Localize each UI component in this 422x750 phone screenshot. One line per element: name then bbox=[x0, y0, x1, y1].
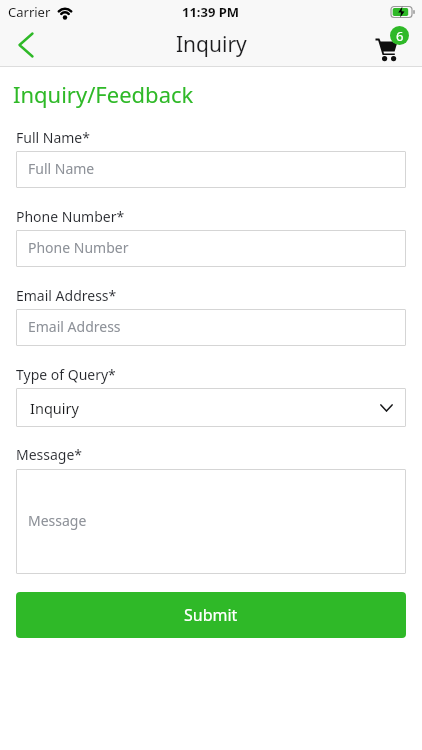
staticText: Message bbox=[28, 511, 87, 530]
staticText: Email Address bbox=[28, 317, 121, 336]
button[interactable]: Phone Number bbox=[16, 230, 406, 267]
button[interactable] bbox=[10, 29, 42, 61]
staticText: Full Name bbox=[28, 159, 95, 178]
staticText: 11:39 PM bbox=[182, 3, 240, 21]
button[interactable]: Inquiry bbox=[16, 388, 406, 427]
staticText: Inquiry bbox=[176, 30, 247, 59]
staticText: Message* bbox=[16, 445, 83, 464]
staticText: Email Address* bbox=[16, 286, 117, 305]
button[interactable]: Full Name bbox=[16, 151, 406, 188]
staticText: Phone Number* bbox=[16, 207, 125, 226]
button[interactable]: Message bbox=[16, 469, 406, 574]
staticText: Submit bbox=[184, 604, 238, 626]
staticText: Full Name* bbox=[16, 128, 90, 147]
staticText: Inquiry/Feedback bbox=[13, 79, 194, 109]
staticText: Type of Query* bbox=[16, 365, 116, 384]
button[interactable]: Submit bbox=[16, 592, 406, 638]
staticText: Carrier bbox=[8, 3, 51, 21]
button[interactable]: 6 bbox=[375, 26, 409, 64]
staticText: Phone Number bbox=[28, 238, 129, 257]
button[interactable]: Email Address bbox=[16, 309, 406, 346]
staticText: 6 bbox=[396, 27, 404, 45]
staticText: Inquiry bbox=[30, 398, 79, 418]
